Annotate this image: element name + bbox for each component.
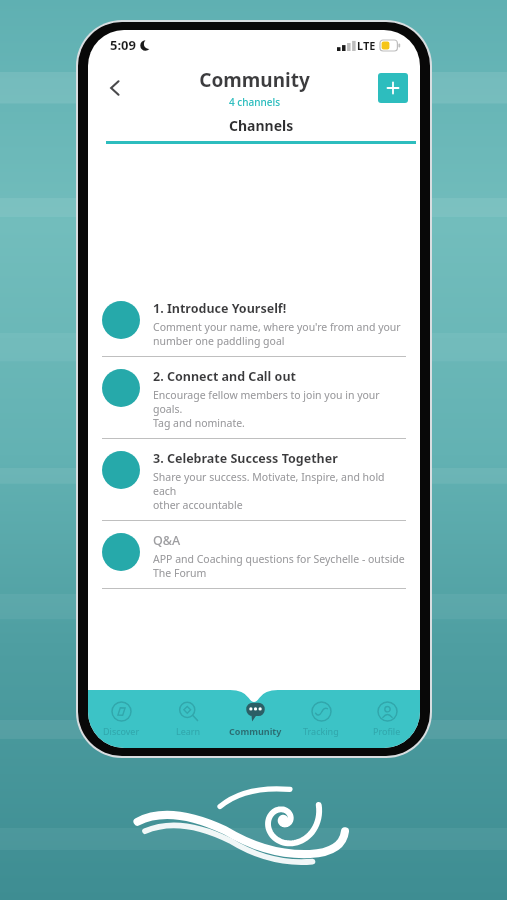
button[interactable]: Community: [222, 690, 288, 748]
staticText: Learn: [176, 725, 201, 737]
button[interactable]: 3. Celebrate Success Together: [88, 439, 420, 520]
staticText: 2. Connect and Call out: [153, 368, 296, 385]
staticText: APP and Coaching questions for Seychelle…: [153, 552, 405, 566]
staticText: 5:09: [110, 36, 136, 54]
staticText: other accountable: [153, 498, 243, 512]
staticText: Community: [199, 67, 310, 93]
staticText: Tracking: [303, 725, 339, 737]
staticText: Discover: [103, 725, 140, 737]
button[interactable]: Q&A: [88, 521, 420, 588]
staticText: 3. Celebrate Success Together: [153, 450, 338, 467]
staticText: Q&A: [153, 532, 181, 549]
staticText: Comment your name, where you're from and…: [153, 320, 401, 334]
button[interactable]: Discover: [88, 690, 155, 748]
staticText: Profile: [373, 725, 401, 737]
button[interactable]: Profile: [354, 690, 420, 748]
staticText: Tag and nominate.: [153, 416, 245, 430]
staticText: The Forum: [153, 566, 207, 580]
button[interactable]: Tracking: [288, 690, 354, 748]
button[interactable]: 1. Introduce Yourself!: [88, 289, 420, 356]
staticText: 4 channels: [229, 95, 281, 109]
staticText: Encourage fellow members to join you in …: [153, 388, 406, 416]
staticText: Share your success. Motivate, Inspire, a…: [153, 470, 406, 498]
button[interactable]: Add channel: [378, 73, 408, 103]
staticText: 1. Introduce Yourself!: [153, 300, 287, 317]
button[interactable]: Back: [96, 69, 134, 107]
staticText: Channels: [229, 116, 294, 135]
button[interactable]: 2. Connect and Call out: [88, 357, 420, 438]
staticText: LTE: [357, 38, 376, 53]
button[interactable]: Learn: [155, 690, 222, 748]
staticText: number one paddling goal: [153, 334, 285, 348]
button[interactable]: Channels: [102, 116, 420, 144]
staticText: Community: [229, 725, 282, 737]
